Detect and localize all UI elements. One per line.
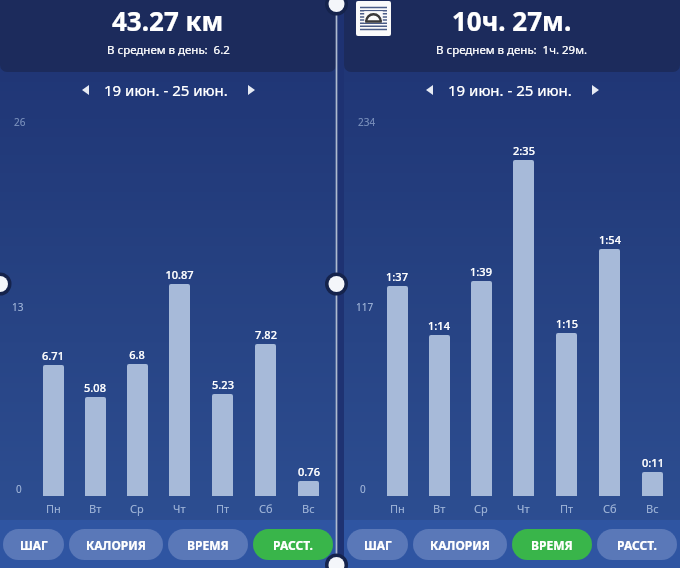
staticText: Вс [302, 501, 315, 516]
button[interactable]: Previous week [416, 77, 442, 103]
button[interactable]: КАЛОРИЯ [413, 529, 507, 560]
staticText: 13 [12, 300, 24, 314]
staticText: Чт [173, 501, 186, 516]
button[interactable]: 2:35 [502, 108, 545, 496]
button[interactable]: 6.8 [116, 108, 158, 496]
staticText: 6.71 [42, 348, 64, 363]
staticText: 0:11 [642, 455, 664, 470]
staticText: 0 [360, 482, 366, 496]
staticText: Вс [646, 501, 659, 516]
staticText: 1:14 [428, 318, 450, 333]
staticText: Пт [216, 501, 230, 516]
staticText: 1:37 [386, 269, 408, 284]
staticText: 234 [358, 115, 376, 129]
staticText: 117 [356, 300, 374, 314]
staticText: КАЛОРИЯ [86, 537, 146, 553]
staticText: 0.76 [298, 464, 320, 479]
button[interactable]: 10.87 [158, 108, 201, 496]
staticText: 2:35 [513, 143, 535, 158]
button[interactable]: ШАГ [347, 529, 408, 560]
staticText: 1:39 [470, 264, 492, 279]
staticText: Сб [259, 501, 273, 516]
button[interactable]: Next week [238, 77, 264, 103]
button[interactable]: Next week [582, 77, 608, 103]
staticText: 5.08 [84, 380, 106, 395]
staticText: 1:54 [599, 232, 621, 247]
staticText: 43.27 км [112, 3, 224, 38]
staticText: Пт [560, 501, 574, 516]
staticText: Ср [130, 501, 144, 516]
button[interactable]: 0:11 [631, 108, 674, 496]
button[interactable]: ВРЕМЯ [512, 529, 592, 560]
button[interactable]: ВРЕМЯ [168, 529, 248, 560]
button[interactable]: Sleep [356, 1, 391, 36]
staticText: 7.82 [255, 327, 277, 342]
staticText: КАЛОРИЯ [430, 537, 490, 553]
button[interactable]: 1:54 [588, 108, 631, 496]
button[interactable]: 1:14 [418, 108, 460, 496]
staticText: Вт [433, 501, 446, 516]
staticText: 0 [16, 482, 22, 496]
button[interactable]: РАССТ. [253, 529, 333, 560]
staticText: Пн [390, 501, 405, 516]
staticText: Пн [46, 501, 61, 516]
staticText: РАССТ. [273, 537, 313, 553]
staticText: РАССТ. [617, 537, 657, 553]
staticText: 19 июн. - 25 июн. [104, 80, 228, 100]
button[interactable]: РАССТ. [597, 529, 677, 560]
staticText: 10ч. 27м. [452, 3, 572, 38]
button[interactable]: ШАГ [3, 529, 64, 560]
button[interactable]: 5.23 [201, 108, 244, 496]
staticText: 19 июн. - 25 июн. [448, 80, 572, 100]
staticText: ШАГ [364, 537, 392, 553]
staticText: Вт [89, 501, 102, 516]
staticText: Ср [474, 501, 488, 516]
staticText: 26 [14, 115, 26, 129]
button[interactable]: 1:39 [460, 108, 502, 496]
button[interactable]: 5.08 [74, 108, 116, 496]
button[interactable]: 6.71 [32, 108, 74, 496]
staticText: 10.87 [165, 267, 194, 282]
button[interactable]: Previous week [72, 77, 98, 103]
button[interactable]: 1:15 [545, 108, 588, 496]
staticText: 6.8 [129, 347, 145, 362]
button[interactable]: 0.76 [287, 108, 330, 496]
staticText: ВРЕМЯ [187, 537, 229, 553]
staticText: 5.23 [212, 377, 234, 392]
staticText: 1:15 [556, 316, 578, 331]
staticText: Чт [517, 501, 530, 516]
button[interactable]: 1:37 [376, 108, 418, 496]
staticText: ШАГ [20, 537, 48, 553]
staticText: Сб [603, 501, 617, 516]
staticText: ВРЕМЯ [531, 537, 573, 553]
button[interactable]: 7.82 [244, 108, 287, 496]
button[interactable]: КАЛОРИЯ [69, 529, 163, 560]
staticText: В среднем в день: 1ч. 29м. [436, 42, 588, 58]
staticText: В среднем в день: 6.2 [107, 42, 230, 58]
